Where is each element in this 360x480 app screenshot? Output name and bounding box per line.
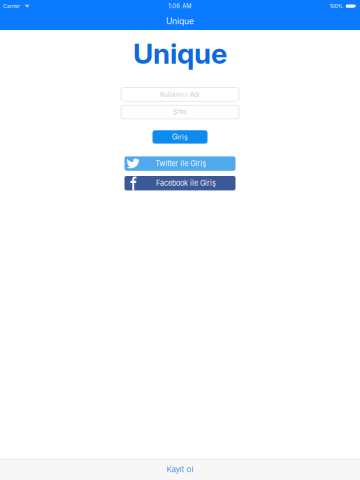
staticText: Twitter ile Giriş: [155, 159, 206, 168]
staticText: 100%: [330, 3, 343, 9]
staticText: Facebook ile Giriş: [156, 179, 216, 188]
staticText: 1:06 AM: [168, 3, 191, 10]
button[interactable]: Kayıt ol: [0, 459, 360, 480]
staticText: Kayıt ol: [166, 465, 193, 474]
staticText: Carrier: [3, 3, 20, 9]
button[interactable]: Facebook ile Giriş: [124, 176, 235, 190]
button[interactable]: Giriş: [152, 130, 207, 144]
button[interactable]: Kullanıcı Adı: [121, 88, 239, 101]
button[interactable]: Şifre: [121, 105, 239, 119]
staticText: Kullanıcı Adı: [160, 91, 200, 98]
button[interactable]: Twitter ile Giriş: [124, 156, 235, 171]
staticText: Giriş: [172, 133, 188, 141]
staticText: Unique: [133, 37, 227, 70]
staticText: Unique: [166, 16, 194, 26]
staticText: Şifre: [173, 108, 187, 116]
